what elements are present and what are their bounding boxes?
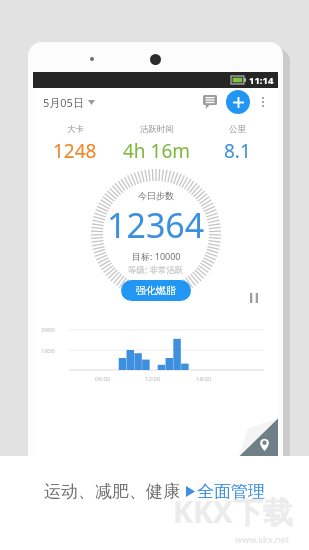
staticText: 12364: [107, 202, 205, 248]
button[interactable]: More options: [253, 92, 273, 112]
button[interactable]: 活跃时间: [113, 122, 201, 166]
button[interactable]: 运动、减肥、健康: [44, 481, 265, 502]
other: Location: [258, 438, 271, 451]
staticText: KKX下载: [173, 491, 293, 532]
staticText: 18:00: [196, 375, 212, 383]
staticText: www.kkx.net: [235, 533, 289, 545]
staticText: 1248: [53, 138, 97, 164]
staticText: 目标: 10000: [132, 250, 181, 262]
staticText: 运动、减肥、健康: [44, 481, 180, 502]
staticText: 1950: [41, 347, 55, 355]
staticText: 公里: [229, 124, 246, 135]
staticText: 活跃时间: [140, 124, 174, 135]
staticText: 3900: [41, 326, 55, 334]
button[interactable]: Add: [226, 90, 250, 114]
staticText: 全面管理: [197, 481, 265, 502]
staticText: 8.1: [224, 138, 251, 164]
staticText: 06:00: [95, 375, 111, 383]
button[interactable]: 强化燃脂: [121, 280, 191, 301]
button[interactable]: 5月05日: [33, 91, 101, 114]
staticText: 大卡: [67, 124, 84, 135]
button[interactable]: Pause: [246, 290, 262, 306]
button[interactable]: 公里: [201, 122, 274, 166]
staticText: 12:00: [145, 375, 161, 383]
staticText: 等级: 非常活跃: [128, 264, 184, 276]
staticText: 11:14: [249, 74, 274, 87]
staticText: 5月05日: [43, 95, 84, 110]
staticText: 今日步数: [138, 190, 174, 201]
button[interactable]: Messages: [198, 90, 222, 114]
staticText: 强化燃脂: [136, 284, 176, 297]
button[interactable]: 大卡: [37, 122, 113, 166]
staticText: 4h 16m: [123, 138, 191, 164]
